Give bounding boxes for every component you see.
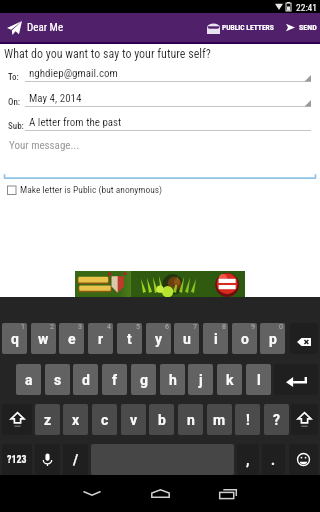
staticText: What do you want to say to your future s… <box>4 47 211 61</box>
staticText: 1 <box>21 323 25 331</box>
button[interactable]: ?123 <box>2 444 32 475</box>
staticText: q <box>11 331 19 347</box>
button[interactable]: h <box>160 364 185 395</box>
staticText: 6 <box>165 323 169 331</box>
button[interactable]: r <box>88 323 113 354</box>
button[interactable]: Shift <box>2 404 32 435</box>
staticText: . <box>271 452 276 468</box>
staticText: / <box>73 452 79 468</box>
button[interactable]: x <box>63 404 88 435</box>
button[interactable]: . <box>262 444 285 475</box>
button[interactable]: a <box>16 364 41 395</box>
staticText: u <box>183 331 191 347</box>
staticText: 9 <box>251 323 255 331</box>
staticText: p <box>269 331 277 347</box>
staticText: z <box>44 412 52 428</box>
button[interactable]: Sub: <box>0 115 320 137</box>
button[interactable]: t <box>117 323 142 354</box>
staticText: ! <box>246 412 250 428</box>
staticText: y <box>155 331 163 347</box>
staticText: e <box>68 331 76 347</box>
button[interactable]: , <box>237 444 259 475</box>
button[interactable]: b <box>149 404 174 435</box>
button[interactable]: s <box>45 364 70 395</box>
staticText: Make letter is Public (but anonymous) <box>20 184 163 195</box>
staticText: x <box>72 412 80 428</box>
staticText: SEND <box>299 23 317 32</box>
staticText: t <box>127 331 132 347</box>
button[interactable]: ! <box>235 404 260 435</box>
staticText: 3 <box>78 323 82 331</box>
staticText: To: <box>8 72 19 83</box>
staticText: Sub: <box>8 121 24 132</box>
staticText: h <box>169 372 177 388</box>
button[interactable]: n <box>178 404 203 435</box>
staticText: nghdiep@gmail.com <box>29 67 118 80</box>
staticText: w <box>38 331 49 347</box>
staticText: 4 <box>107 323 111 331</box>
staticText: On: <box>8 97 21 108</box>
button[interactable]: p <box>260 323 285 354</box>
button[interactable]: i <box>203 323 228 354</box>
button[interactable]: z <box>35 404 60 435</box>
button[interactable]: g <box>131 364 156 395</box>
staticText: f <box>112 372 118 388</box>
button[interactable]: Voice input <box>35 444 60 475</box>
button[interactable]: m <box>207 404 232 435</box>
staticText: 7 <box>193 323 197 331</box>
button[interactable]: / <box>63 444 88 475</box>
button[interactable]: v <box>121 404 146 435</box>
button[interactable]: c <box>92 404 117 435</box>
button[interactable]: Shift <box>291 404 318 435</box>
staticText: l <box>257 372 261 388</box>
button[interactable]: Advertisement <box>75 271 245 297</box>
button[interactable]: d <box>73 364 98 395</box>
staticText: i <box>214 331 218 347</box>
button[interactable]: Dear Me <box>0 13 80 42</box>
button[interactable]: Backspace <box>290 323 318 354</box>
staticText: n <box>187 412 195 428</box>
staticText: 8 <box>222 323 226 331</box>
button[interactable]: l <box>246 364 271 395</box>
staticText: A letter from the past <box>29 116 122 129</box>
staticText: 22:41 <box>296 2 317 13</box>
staticText: d <box>82 372 90 388</box>
button[interactable]: e <box>59 323 84 354</box>
button[interactable]: k <box>217 364 242 395</box>
staticText: a <box>25 372 33 388</box>
button[interactable]: f <box>102 364 127 395</box>
staticText: b <box>158 412 166 428</box>
staticText: o <box>241 331 249 347</box>
button[interactable]: w <box>31 323 56 354</box>
staticText: r <box>98 331 104 347</box>
button[interactable]: Make letter is Public (but anonymous) <box>4 181 163 197</box>
staticText: , <box>246 452 250 468</box>
button[interactable]: ? <box>264 404 289 435</box>
button[interactable]: u <box>174 323 199 354</box>
staticText: 2 <box>50 323 54 331</box>
staticText: k <box>226 372 234 388</box>
button[interactable]: q <box>2 323 27 354</box>
button[interactable]: On: <box>0 91 320 113</box>
button[interactable]: Enter <box>274 364 318 395</box>
staticText: May 4, 2014 <box>29 92 82 105</box>
button[interactable]: To: <box>0 66 320 88</box>
staticText: c <box>101 412 109 428</box>
staticText: 0 <box>279 323 283 331</box>
staticText: ? <box>273 412 280 428</box>
button[interactable]: Recent apps <box>206 475 250 512</box>
button[interactable]: o <box>232 323 257 354</box>
button[interactable]: Emoji <box>289 444 318 475</box>
staticText: m <box>213 412 226 428</box>
button[interactable]: SEND <box>282 13 320 42</box>
staticText: ?123 <box>7 454 27 466</box>
button[interactable]: Back <box>70 475 114 512</box>
button[interactable]: PUBLIC LETTERS <box>204 13 278 42</box>
staticText: v <box>130 412 138 428</box>
button[interactable]: j <box>188 364 213 395</box>
staticText: Dear Me <box>27 21 64 34</box>
staticText: PUBLIC LETTERS <box>222 23 274 32</box>
button[interactable]: y <box>146 323 171 354</box>
button[interactable]: Home <box>138 475 182 512</box>
